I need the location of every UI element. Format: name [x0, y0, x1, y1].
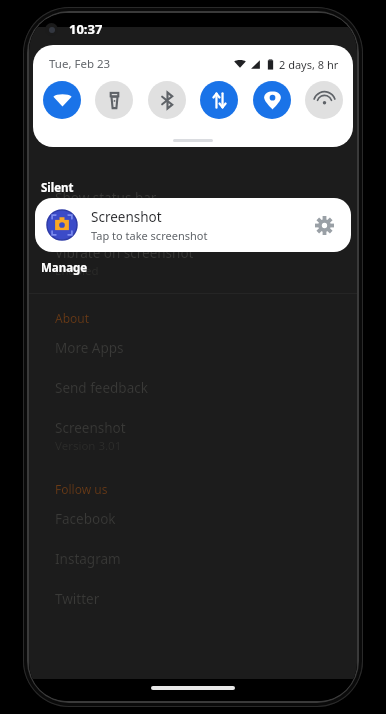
button[interactable]: Send feedback: [29, 368, 357, 408]
staticText: Enabled: [55, 263, 99, 279]
staticText: About: [55, 310, 90, 326]
staticText: Enabled: [55, 208, 99, 224]
staticText: 10:37: [69, 20, 103, 38]
staticText: Screenshot: [55, 419, 126, 437]
staticText: Follow us: [55, 481, 108, 497]
button[interactable]: Wi-Fi: [43, 81, 81, 119]
staticText: Vibrate on screenshot: [55, 244, 194, 262]
button[interactable]: Mobile data: [200, 81, 238, 119]
staticText: Tue, Feb 23: [49, 56, 111, 72]
button[interactable]: Hotspot: [305, 81, 343, 119]
button[interactable]: Show status bar: [29, 179, 357, 234]
staticText: Instagram: [55, 550, 121, 568]
staticText: 2 days, 8 hr: [279, 57, 339, 72]
staticText: Tap to take screenshot: [91, 228, 208, 243]
button[interactable]: Bluetooth: [148, 81, 186, 119]
button[interactable]: Screenshot: [35, 198, 351, 252]
staticText: Version 3.01: [55, 438, 122, 454]
button[interactable]: Vibrate on screenshot: [29, 234, 357, 289]
button[interactable]: Flashlight: [95, 81, 133, 119]
staticText: Twitter: [55, 590, 100, 608]
staticText: Manage: [41, 260, 88, 276]
staticText: Facebook: [55, 510, 116, 528]
button[interactable]: Location: [253, 81, 291, 119]
staticText: Silent: [41, 180, 74, 196]
staticText: Show status bar: [55, 189, 157, 207]
staticText: Screenshot: [91, 208, 162, 226]
staticText: More Apps: [55, 339, 124, 357]
staticText: Send feedback: [55, 379, 148, 397]
button[interactable]: Settings: [309, 210, 339, 240]
